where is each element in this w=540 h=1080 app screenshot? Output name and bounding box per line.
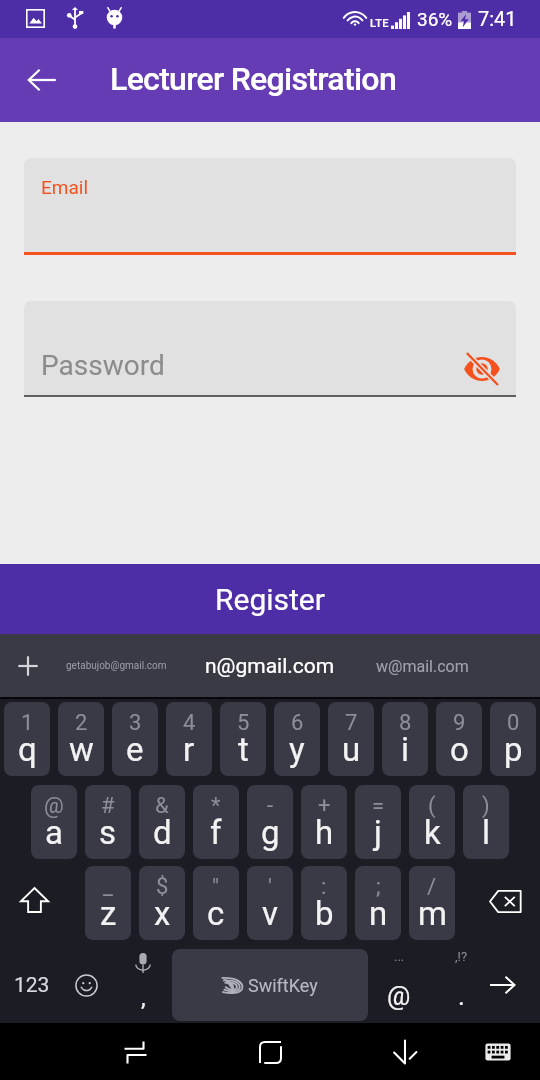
- staticText: z: [100, 894, 117, 933]
- button[interactable]: 123: [0, 949, 58, 1021]
- button[interactable]: Add clipboard item: [9, 647, 47, 685]
- button[interactable]: ": [193, 866, 239, 940]
- button[interactable]: ;: [355, 866, 401, 940]
- staticText: ): [482, 793, 490, 819]
- staticText: p: [504, 730, 523, 769]
- button[interactable]: :: [301, 866, 347, 940]
- button[interactable]: 6: [274, 702, 320, 776]
- staticText: getabujob@gmail.com: [66, 660, 167, 672]
- staticText: 4: [183, 710, 196, 736]
- staticText: 8: [399, 710, 412, 736]
- button[interactable]: 7: [328, 702, 374, 776]
- button[interactable]: *: [193, 785, 239, 859]
- staticText: ...: [394, 949, 405, 964]
- button[interactable]: Back: [18, 56, 66, 104]
- button[interactable]: ': [247, 866, 293, 940]
- button[interactable]: Recents: [113, 1030, 157, 1074]
- button[interactable]: Register: [0, 564, 540, 634]
- staticText: -: [267, 793, 274, 819]
- staticText: n: [369, 894, 388, 933]
- staticText: 5: [237, 710, 250, 736]
- staticText: ,: [141, 984, 146, 1012]
- staticText: @: [44, 793, 64, 819]
- staticText: Lecturer Registration: [110, 60, 396, 98]
- staticText: ;: [376, 874, 381, 900]
- staticText: h: [315, 813, 334, 852]
- button[interactable]: 8: [382, 702, 428, 776]
- staticText: _: [103, 874, 113, 900]
- staticText: *: [211, 793, 221, 819]
- button[interactable]: ,: [114, 949, 172, 1021]
- button[interactable]: Backspace: [455, 866, 540, 940]
- button[interactable]: +: [301, 785, 347, 859]
- staticText: (: [428, 793, 436, 819]
- staticText: i: [401, 730, 410, 769]
- button[interactable]: (: [409, 785, 455, 859]
- staticText: 0: [507, 710, 520, 736]
- staticText: LTE: [370, 17, 389, 30]
- button[interactable]: ,!?: [430, 949, 492, 1021]
- button[interactable]: 0: [490, 702, 536, 776]
- staticText: c: [207, 894, 225, 933]
- staticText: j: [374, 813, 382, 852]
- button[interactable]: n@gmail.com: [185, 640, 355, 692]
- button[interactable]: Password: [24, 301, 516, 397]
- button[interactable]: /: [409, 866, 455, 940]
- staticText: @: [387, 981, 411, 1011]
- staticText: &: [155, 793, 169, 819]
- button[interactable]: Space: [172, 949, 368, 1021]
- staticText: 9: [453, 710, 466, 736]
- staticText: v: [262, 894, 278, 933]
- button[interactable]: w@mail.com: [362, 640, 482, 692]
- staticText: =: [372, 793, 385, 819]
- button[interactable]: @: [31, 785, 77, 859]
- staticText: :: [321, 874, 327, 900]
- button[interactable]: =: [355, 785, 401, 859]
- button[interactable]: &: [139, 785, 185, 859]
- button[interactable]: getabujob@gmail.com: [57, 640, 175, 692]
- staticText: b: [315, 894, 334, 933]
- staticText: n@gmail.com: [205, 654, 335, 679]
- button[interactable]: Home: [248, 1030, 292, 1074]
- staticText: s: [99, 813, 117, 852]
- staticText: 2: [75, 710, 88, 736]
- staticText: x: [154, 894, 171, 933]
- staticText: w: [69, 730, 94, 769]
- staticText: a: [45, 813, 63, 852]
- staticText: ': [268, 874, 272, 900]
- staticText: 3: [129, 710, 142, 736]
- button[interactable]: Shift: [0, 866, 85, 940]
- staticText: u: [342, 730, 361, 769]
- button[interactable]: 9: [436, 702, 482, 776]
- staticText: w@mail.com: [376, 657, 469, 676]
- button[interactable]: _: [85, 866, 131, 940]
- staticText: Email: [41, 176, 89, 198]
- staticText: #: [101, 793, 115, 819]
- button[interactable]: 5: [220, 702, 266, 776]
- button[interactable]: ...: [368, 949, 430, 1021]
- button[interactable]: -: [247, 785, 293, 859]
- staticText: t: [238, 730, 249, 769]
- button[interactable]: 4: [166, 702, 212, 776]
- staticText: l: [482, 813, 491, 852]
- button[interactable]: Hide keyboard: [383, 1030, 427, 1074]
- button[interactable]: Toggle password visibility: [460, 347, 504, 391]
- button[interactable]: Emoji: [58, 949, 114, 1021]
- button[interactable]: $: [139, 866, 185, 940]
- button[interactable]: #: [85, 785, 131, 859]
- staticText: 7: [345, 710, 358, 736]
- staticText: .: [458, 981, 465, 1011]
- staticText: Register: [215, 582, 325, 617]
- button[interactable]: 2: [58, 702, 104, 776]
- button[interactable]: 3: [112, 702, 158, 776]
- button[interactable]: ): [463, 785, 509, 859]
- staticText: SwiftKey: [248, 975, 318, 996]
- button[interactable]: Switch keyboard: [476, 1030, 520, 1074]
- staticText: q: [18, 730, 37, 769]
- staticText: m: [418, 894, 447, 933]
- button[interactable]: 1: [4, 702, 50, 776]
- button[interactable]: Enter: [492, 949, 540, 1021]
- staticText: 6: [291, 710, 304, 736]
- button[interactable]: Email: [24, 158, 516, 255]
- staticText: +: [318, 793, 331, 819]
